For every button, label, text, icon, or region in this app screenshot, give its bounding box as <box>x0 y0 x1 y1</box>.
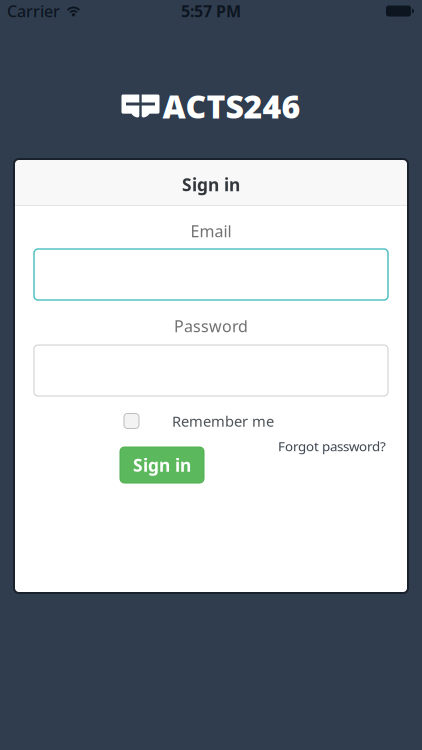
button[interactable]: Forgot password? <box>278 439 386 453</box>
staticText: Password <box>174 315 248 337</box>
staticText: Sign in <box>182 173 240 196</box>
staticText: Email <box>190 220 231 242</box>
staticText: Carrier <box>7 0 60 22</box>
staticText: Forgot password? <box>278 437 386 455</box>
staticText: Sign in <box>133 453 191 476</box>
staticText: Remember me <box>172 411 274 431</box>
staticText: ACTS246 <box>162 85 300 127</box>
button[interactable]: Password <box>34 345 388 396</box>
button[interactable]: Sign in <box>120 447 204 483</box>
button[interactable]: Email <box>34 249 388 300</box>
button[interactable]: Remember me <box>124 411 274 431</box>
staticText: 5:57 PM <box>181 0 241 22</box>
